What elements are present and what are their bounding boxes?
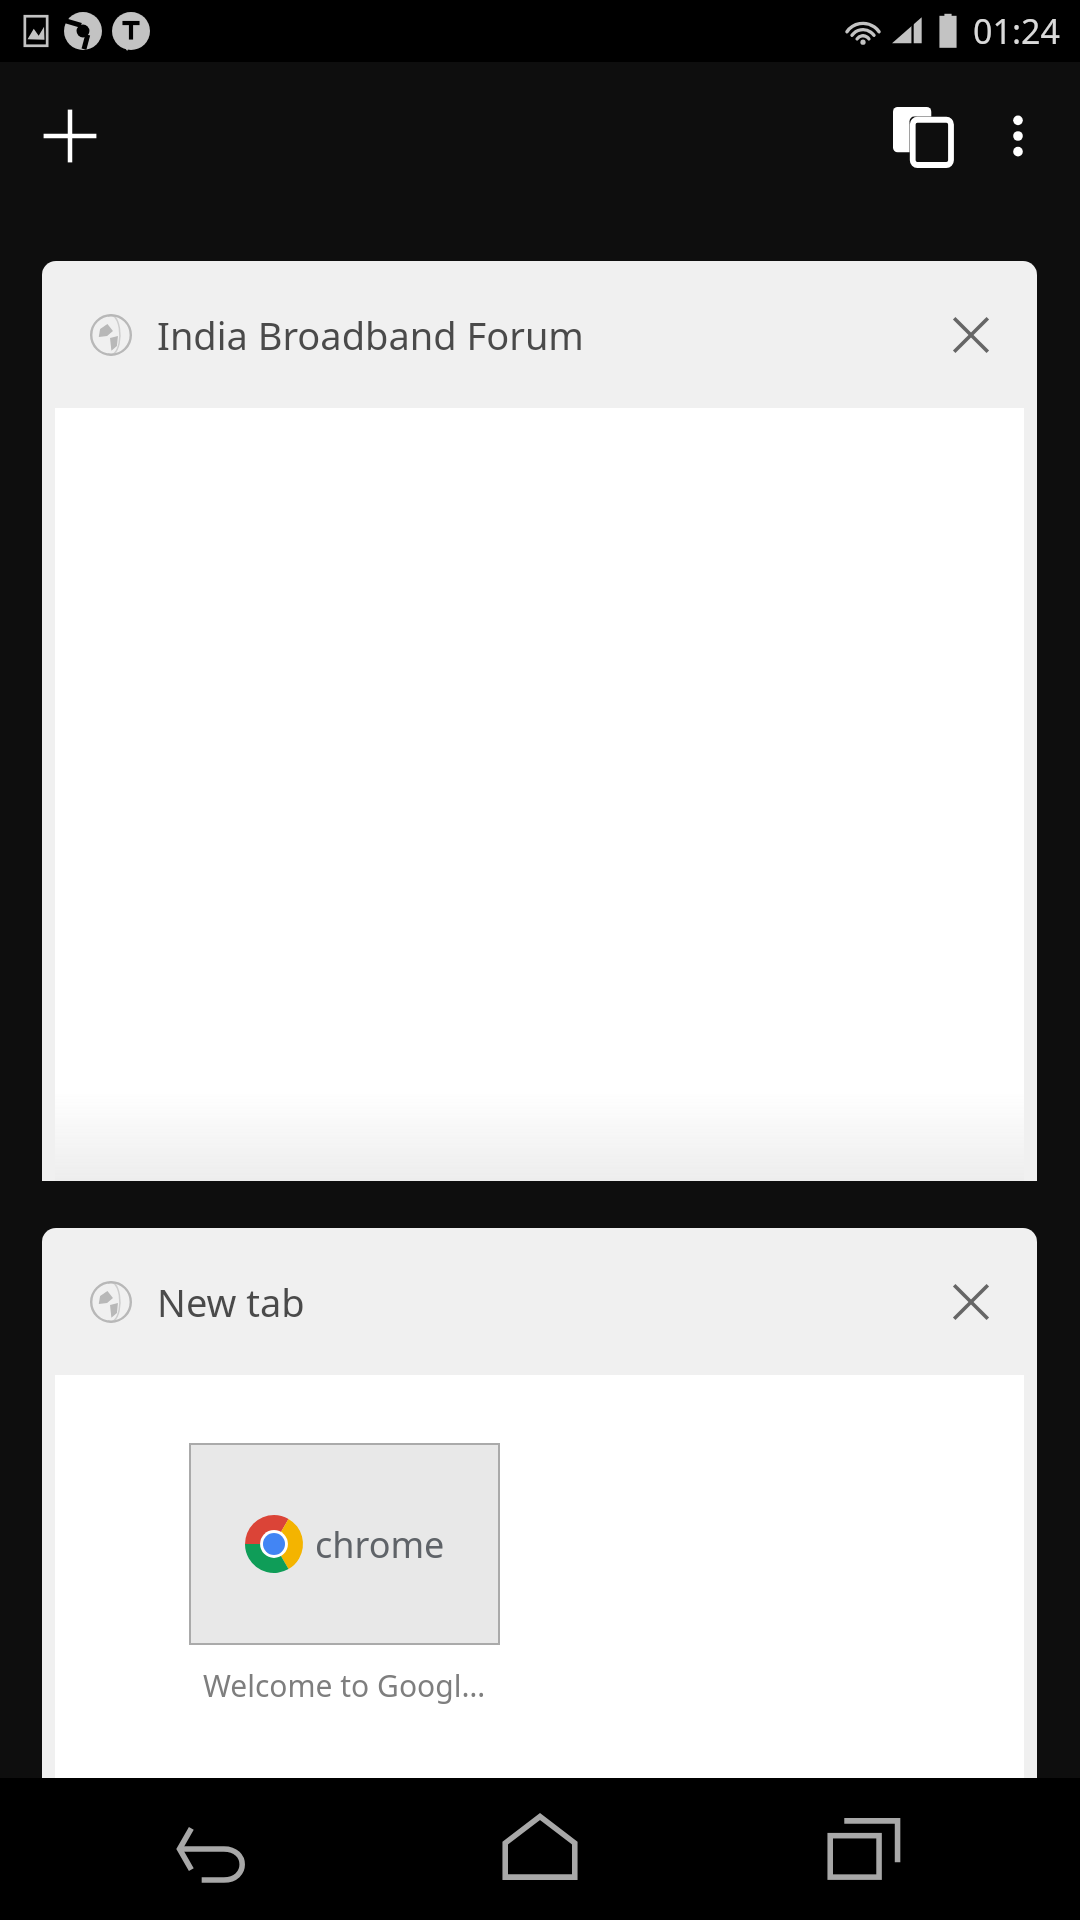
button[interactable]: Tab switcher (874, 88, 970, 184)
button[interactable]: Close tab (925, 289, 1017, 381)
staticText: Welcome to Googl… (203, 1665, 486, 1706)
button[interactable]: India Broadband Forum (42, 261, 1037, 1181)
button[interactable]: New tab (22, 88, 118, 184)
staticText: New tab (157, 1276, 305, 1328)
button[interactable]: New tab (42, 1228, 1037, 1848)
button[interactable]: Home (475, 1784, 605, 1914)
staticText: India Broadband Forum (157, 309, 584, 361)
button[interactable]: Back (150, 1784, 280, 1914)
button[interactable]: More options (970, 88, 1066, 184)
staticText: chrome (315, 1520, 445, 1569)
button[interactable]: Recent apps (800, 1784, 930, 1914)
staticText: 01:24 (973, 8, 1060, 54)
button[interactable]: Close tab (925, 1256, 1017, 1348)
